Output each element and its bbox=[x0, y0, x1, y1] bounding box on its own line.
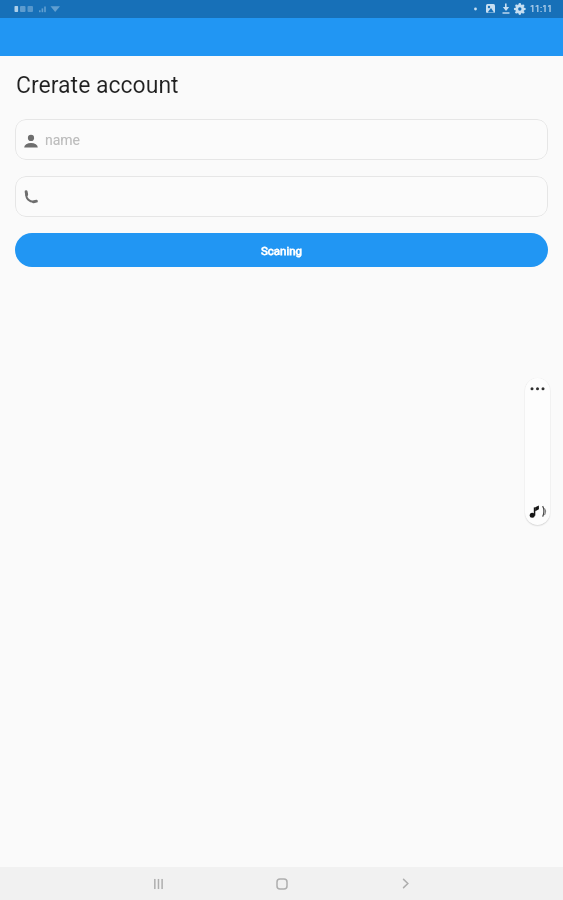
button[interactable]: Edge panel bbox=[525, 378, 550, 525]
staticText: Scaning bbox=[261, 244, 303, 257]
staticText: Crerate account bbox=[16, 72, 179, 99]
button[interactable]: Recents bbox=[126, 867, 190, 900]
button[interactable] bbox=[15, 176, 548, 217]
button[interactable]: name bbox=[15, 119, 548, 160]
button[interactable]: Back bbox=[373, 867, 437, 900]
button[interactable]: Home bbox=[250, 867, 314, 900]
staticText: 11:11 bbox=[530, 4, 553, 15]
staticText: name bbox=[45, 132, 81, 148]
button[interactable]: Scaning bbox=[15, 233, 548, 267]
